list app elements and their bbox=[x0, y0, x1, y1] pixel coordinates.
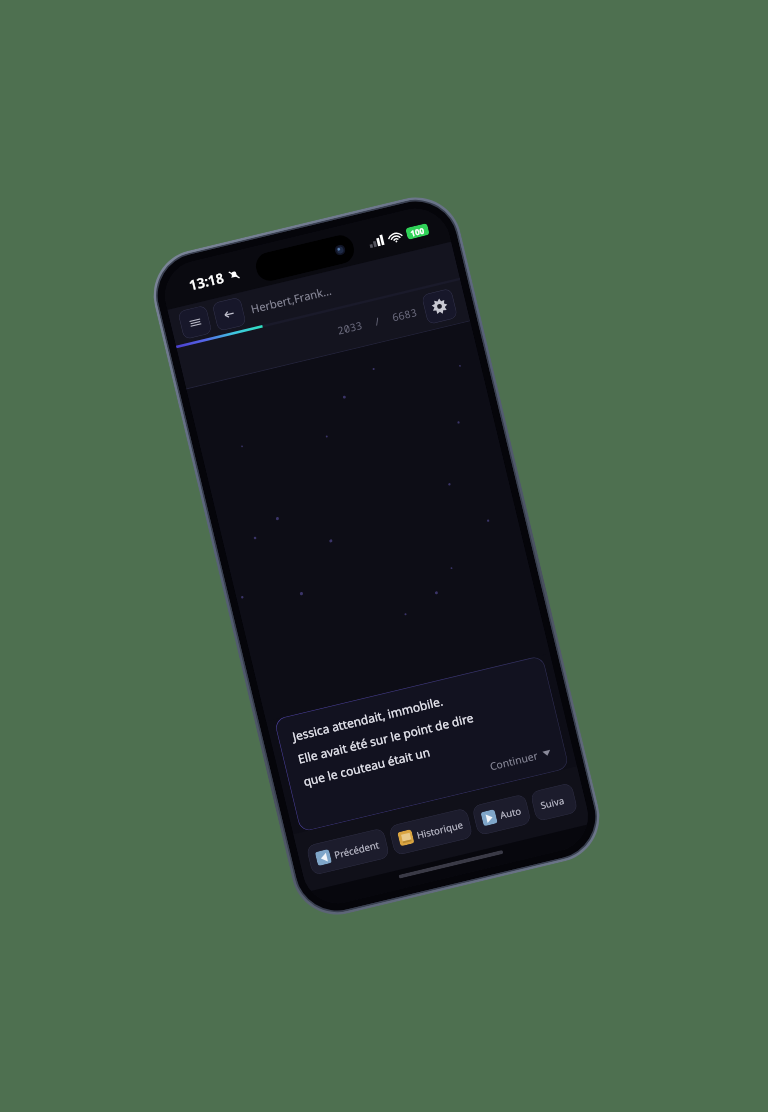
staticText: Auto bbox=[498, 804, 522, 821]
staticText: que le couteau était un bbox=[302, 743, 432, 789]
staticText: 100 bbox=[409, 225, 426, 239]
button[interactable]: Historique bbox=[388, 808, 473, 856]
staticText: 13:18 bbox=[187, 268, 226, 294]
staticText: Elle avait été sur le point de dire bbox=[296, 709, 475, 767]
button[interactable]: Jessica attendait, immobile. bbox=[274, 655, 569, 832]
button[interactable]: Back bbox=[212, 297, 246, 331]
button[interactable]: Menu bbox=[178, 305, 212, 340]
staticText: Historique bbox=[415, 818, 464, 841]
button[interactable]: Auto bbox=[472, 794, 532, 836]
button[interactable]: Settings bbox=[421, 288, 458, 325]
staticText: Continuer bbox=[488, 748, 539, 773]
button[interactable]: Précédent bbox=[306, 828, 390, 876]
staticText: Herbert,Frank… bbox=[249, 283, 333, 317]
staticText: Jessica attendait, immobile. bbox=[291, 693, 445, 744]
button[interactable]: Suivant bbox=[530, 782, 578, 822]
staticText: Précédent bbox=[333, 838, 381, 861]
staticText: Suivant bbox=[539, 793, 569, 812]
staticText: 2033 / 6683 bbox=[336, 305, 419, 338]
